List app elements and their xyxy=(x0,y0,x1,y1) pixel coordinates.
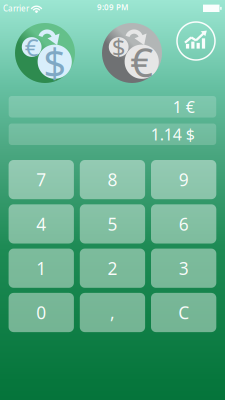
staticText: , xyxy=(110,301,115,324)
staticText: C xyxy=(178,301,189,324)
button[interactable]: Exchange rate chart xyxy=(177,22,215,60)
staticText: 0 xyxy=(36,301,46,324)
button[interactable]: 3 xyxy=(151,249,216,288)
button[interactable]: C xyxy=(151,293,216,332)
staticText: 9:09 PM xyxy=(97,2,128,12)
staticText: 6 xyxy=(179,212,189,235)
button[interactable]: 9 xyxy=(151,160,216,199)
staticText: 7 xyxy=(36,168,46,191)
button[interactable]: , xyxy=(80,293,145,332)
button[interactable]: Euro to Dollar xyxy=(15,23,75,83)
staticText: 3 xyxy=(179,257,189,280)
staticText: 5 xyxy=(107,212,117,235)
staticText: 2 xyxy=(107,257,117,280)
button[interactable]: 0 xyxy=(9,293,74,332)
button[interactable]: 7 xyxy=(9,160,74,199)
staticText: $ xyxy=(43,35,66,88)
staticText: 1.14 $ xyxy=(151,124,195,145)
button[interactable]: 2 xyxy=(80,249,145,288)
staticText: 1 € xyxy=(173,96,195,117)
button[interactable]: 8 xyxy=(80,160,145,199)
staticText: 4 xyxy=(36,212,46,235)
button[interactable]: 4 xyxy=(9,204,74,243)
button[interactable]: 6 xyxy=(151,204,216,243)
button[interactable]: Dollar to Euro xyxy=(102,23,162,83)
staticText: € xyxy=(25,31,39,63)
staticText: $ xyxy=(112,31,126,63)
button[interactable]: 5 xyxy=(80,204,145,243)
staticText: Carrier xyxy=(3,3,29,14)
staticText: 9 xyxy=(179,168,189,191)
button[interactable]: 1 xyxy=(9,249,74,288)
staticText: 1 xyxy=(36,257,46,280)
staticText: 8 xyxy=(107,168,117,191)
staticText: € xyxy=(130,35,153,88)
